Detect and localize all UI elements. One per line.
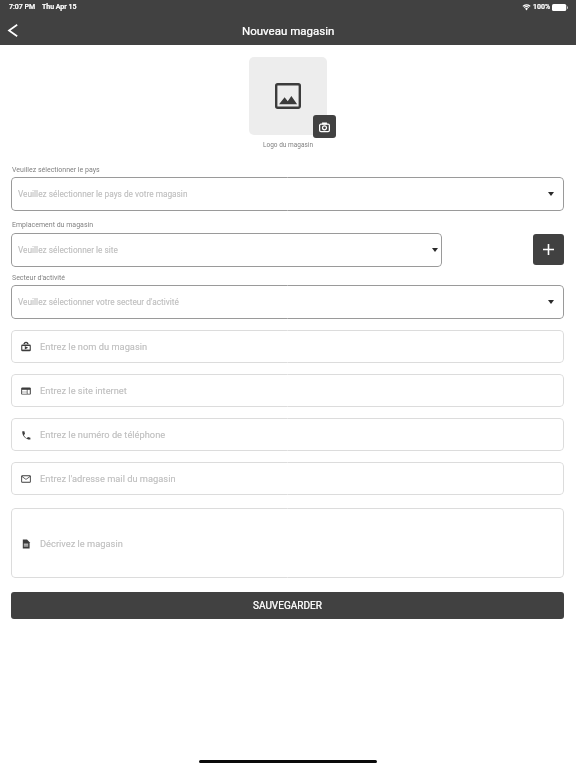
staticText: 7:07 PM bbox=[9, 3, 36, 11]
staticText: Décrivez le magasin bbox=[40, 538, 123, 549]
staticText: Secteur d'activité bbox=[12, 274, 66, 282]
staticText: Veuillez sélectionner le site bbox=[18, 245, 118, 255]
staticText: Nouveau magasin bbox=[242, 24, 335, 37]
button[interactable]: Veuillez sélectionner le pays de votre m… bbox=[11, 177, 564, 211]
button[interactable]: Veuillez sélectionner votre secteur d'ac… bbox=[11, 285, 564, 319]
staticText: SAUVEGARDER bbox=[253, 600, 322, 612]
staticText: Emplacement du magasin bbox=[12, 221, 94, 229]
staticText: 100% bbox=[533, 3, 551, 11]
staticText: Entrez le numéro de téléphone bbox=[40, 429, 166, 440]
button[interactable]: Entrez le numéro de téléphone bbox=[11, 418, 564, 451]
button[interactable]: Entrez le nom du magasin bbox=[11, 330, 564, 363]
button[interactable]: Entrez l'adresse mail du magasin bbox=[11, 462, 564, 495]
button[interactable]: Take photo bbox=[313, 115, 336, 138]
button[interactable]: Entrez le site internet bbox=[11, 374, 564, 407]
button[interactable]: Back bbox=[0, 16, 28, 44]
staticText: Thu Apr 15 bbox=[42, 3, 77, 11]
staticText: Veuillez sélectionner votre secteur d'ac… bbox=[18, 297, 179, 307]
staticText: Entrez le nom du magasin bbox=[40, 341, 148, 352]
button[interactable]: SAUVEGARDER bbox=[11, 592, 564, 619]
staticText: Veuillez sélectionner le pays de votre m… bbox=[18, 189, 188, 199]
button[interactable]: Add site bbox=[533, 234, 564, 265]
staticText: Veuillez sélectionner le pays bbox=[12, 166, 100, 174]
staticText: Entrez le site internet bbox=[40, 385, 127, 396]
staticText: Logo du magasin bbox=[263, 141, 313, 149]
button[interactable]: Veuillez sélectionner le site bbox=[11, 233, 442, 267]
button[interactable]: Décrivez le magasin bbox=[11, 508, 564, 578]
staticText: Entrez l'adresse mail du magasin bbox=[40, 473, 176, 484]
button[interactable]: Store logo bbox=[249, 57, 327, 135]
